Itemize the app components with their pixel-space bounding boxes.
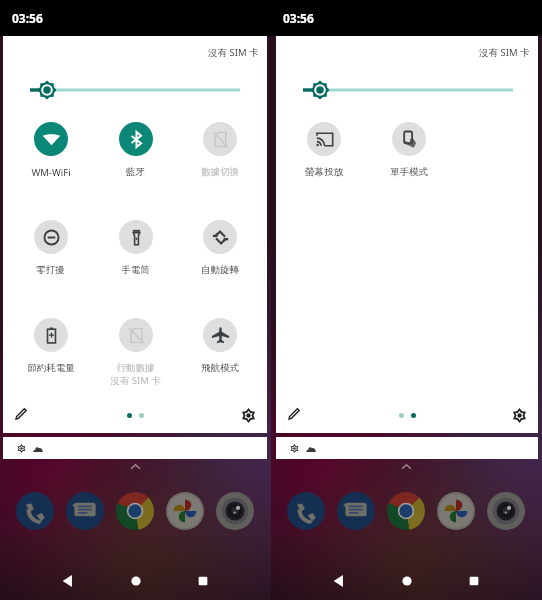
staticText: 03:56 xyxy=(12,10,43,26)
button[interactable]: Messages xyxy=(335,490,377,532)
staticText: 節約耗電量 xyxy=(27,362,75,374)
button[interactable]: WM-WiFi xyxy=(8,122,93,179)
button[interactable]: Camera xyxy=(214,490,256,532)
button[interactable]: Home xyxy=(394,568,420,594)
staticText: 飛航模式 xyxy=(201,362,239,374)
button[interactable]: Settings xyxy=(237,406,259,424)
button[interactable]: 節約耗電量 xyxy=(8,318,93,374)
staticText: 沒有 SIM 卡 xyxy=(479,46,530,59)
staticText: 手電筒 xyxy=(121,264,150,276)
staticText: 行動數據 沒有 SIM 卡 xyxy=(110,362,161,387)
button[interactable]: Edit tiles xyxy=(283,406,305,424)
button[interactable]: Recents xyxy=(461,568,487,594)
button[interactable]: 行動數據 沒有 SIM 卡 xyxy=(93,318,178,387)
button[interactable]: Messages xyxy=(64,490,106,532)
button[interactable]: Edit tiles xyxy=(10,406,32,424)
staticText: 零打擾 xyxy=(36,264,65,276)
button[interactable]: Phone xyxy=(285,490,327,532)
button[interactable]: 藍牙 xyxy=(93,122,178,178)
staticText: 數據切換 xyxy=(201,166,239,178)
button[interactable]: Recents xyxy=(190,568,216,594)
button[interactable]: 手電筒 xyxy=(93,220,178,276)
button[interactable]: Back xyxy=(55,568,81,594)
staticText: 藍牙 xyxy=(126,166,145,178)
staticText: 螢幕投放 xyxy=(305,166,343,178)
button[interactable]: Photos xyxy=(435,490,477,532)
button[interactable]: 數據切換 xyxy=(178,122,262,178)
button[interactable]: Chrome xyxy=(114,490,156,532)
button[interactable]: Phone xyxy=(14,490,56,532)
button[interactable]: 飛航模式 xyxy=(178,318,262,374)
button[interactable]: Camera xyxy=(485,490,527,532)
button[interactable]: Settings xyxy=(508,406,530,424)
staticText: 單手模式 xyxy=(390,166,428,178)
button[interactable]: 單手模式 xyxy=(366,122,451,178)
button[interactable]: 螢幕投放 xyxy=(281,122,366,178)
button[interactable]: 零打擾 xyxy=(8,220,93,276)
staticText: 沒有 SIM 卡 xyxy=(208,46,259,59)
button[interactable]: Photos xyxy=(164,490,206,532)
button[interactable]: Home xyxy=(123,568,149,594)
staticText: 自動旋轉 xyxy=(201,264,239,276)
staticText: 03:56 xyxy=(283,10,314,26)
button[interactable]: Back xyxy=(326,568,352,594)
staticText: WM-WiFi xyxy=(31,166,71,179)
button[interactable]: Chrome xyxy=(385,490,427,532)
button[interactable]: 自動旋轉 xyxy=(178,220,262,276)
